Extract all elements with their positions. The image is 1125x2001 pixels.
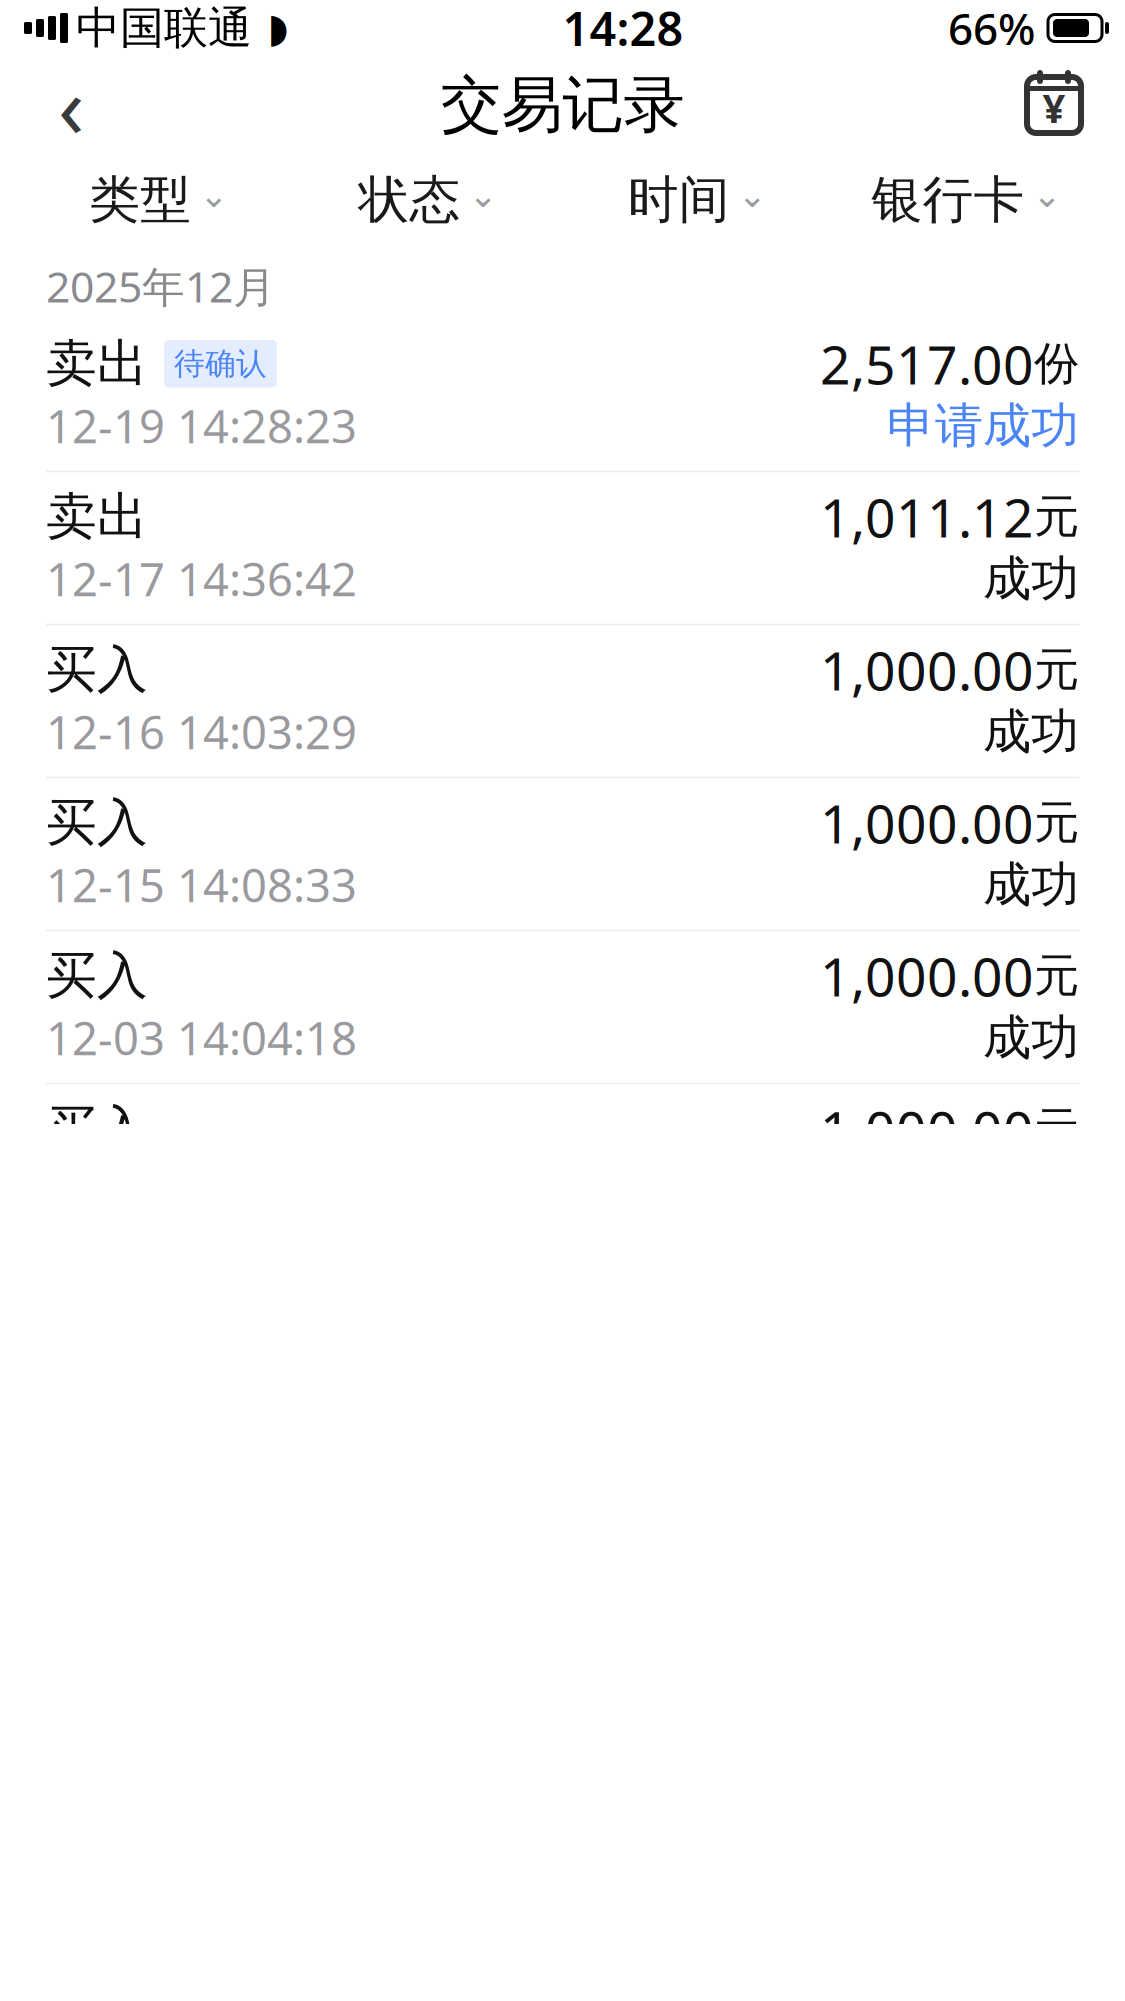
staticText: 买入: [46, 639, 148, 701]
staticText: ◗: [267, 5, 288, 51]
staticText: 买入: [46, 792, 148, 854]
button[interactable]: 卖出: [0, 479, 1125, 632]
staticText: 12-15 14:08:33: [46, 855, 357, 915]
staticText: 1,000.00: [820, 1094, 1034, 1165]
staticText: 买入: [46, 945, 148, 1007]
staticText: ‹: [58, 48, 84, 162]
button[interactable]: 买入: [0, 1091, 1125, 1230]
button[interactable]: 按月筛选: [1009, 60, 1099, 150]
button[interactable]: 类型: [24, 154, 293, 246]
button[interactable]: 银行卡: [832, 154, 1101, 246]
button[interactable]: 时间: [562, 154, 832, 246]
staticText: 1,011.12: [820, 481, 1034, 552]
staticText: 元: [1034, 642, 1079, 698]
staticText: ¥: [1042, 81, 1065, 134]
staticText: 状态: [358, 169, 460, 231]
staticText: 12-16 14:03:29: [46, 702, 357, 762]
button[interactable]: 买入: [0, 938, 1125, 1091]
button[interactable]: 买入: [0, 785, 1125, 938]
staticText: 份: [1034, 336, 1079, 392]
staticText: 买入: [46, 1098, 148, 1161]
staticText: ⌄: [738, 175, 767, 215]
button[interactable]: 状态: [293, 154, 562, 246]
staticText: 交易记录: [440, 67, 684, 143]
staticText: 12-03 14:04:18: [46, 1008, 357, 1068]
staticText: ⌄: [468, 175, 497, 215]
staticText: 12-19 14:28:23: [46, 396, 357, 456]
staticText: ⌄: [1032, 175, 1061, 215]
staticText: 2025年12月: [46, 258, 276, 314]
staticText: 中国联通: [76, 1, 252, 55]
staticText: 成功: [983, 855, 1079, 914]
staticText: 成功: [983, 702, 1079, 761]
staticText: 成功: [983, 549, 1079, 608]
staticText: 1,000.00: [820, 634, 1034, 705]
staticText: 元: [1034, 489, 1079, 545]
staticText: 1,000.00: [820, 787, 1034, 858]
staticText: 1,000.00: [820, 940, 1034, 1011]
staticText: 元: [1034, 948, 1079, 1004]
staticText: ⌄: [199, 175, 228, 215]
button[interactable]: 返回: [26, 60, 116, 150]
staticText: 成功: [983, 1008, 1079, 1067]
button[interactable]: 买入: [0, 632, 1125, 785]
button[interactable]: 卖出: [0, 326, 1125, 479]
staticText: 66%: [948, 0, 1035, 57]
staticText: 待确认: [174, 345, 267, 383]
staticText: 2,517.00: [820, 328, 1034, 399]
staticText: 卖出: [46, 486, 148, 548]
staticText: 14:28: [562, 0, 683, 59]
staticText: 时间: [628, 169, 730, 231]
staticText: 类型: [89, 169, 191, 231]
staticText: 申请成功: [887, 396, 1079, 455]
staticText: 元: [1034, 1102, 1079, 1157]
staticText: 卖出: [46, 333, 148, 395]
staticText: 12-17 14:36:42: [46, 549, 357, 609]
staticText: 元: [1034, 795, 1079, 851]
staticText: 银行卡: [871, 169, 1024, 231]
